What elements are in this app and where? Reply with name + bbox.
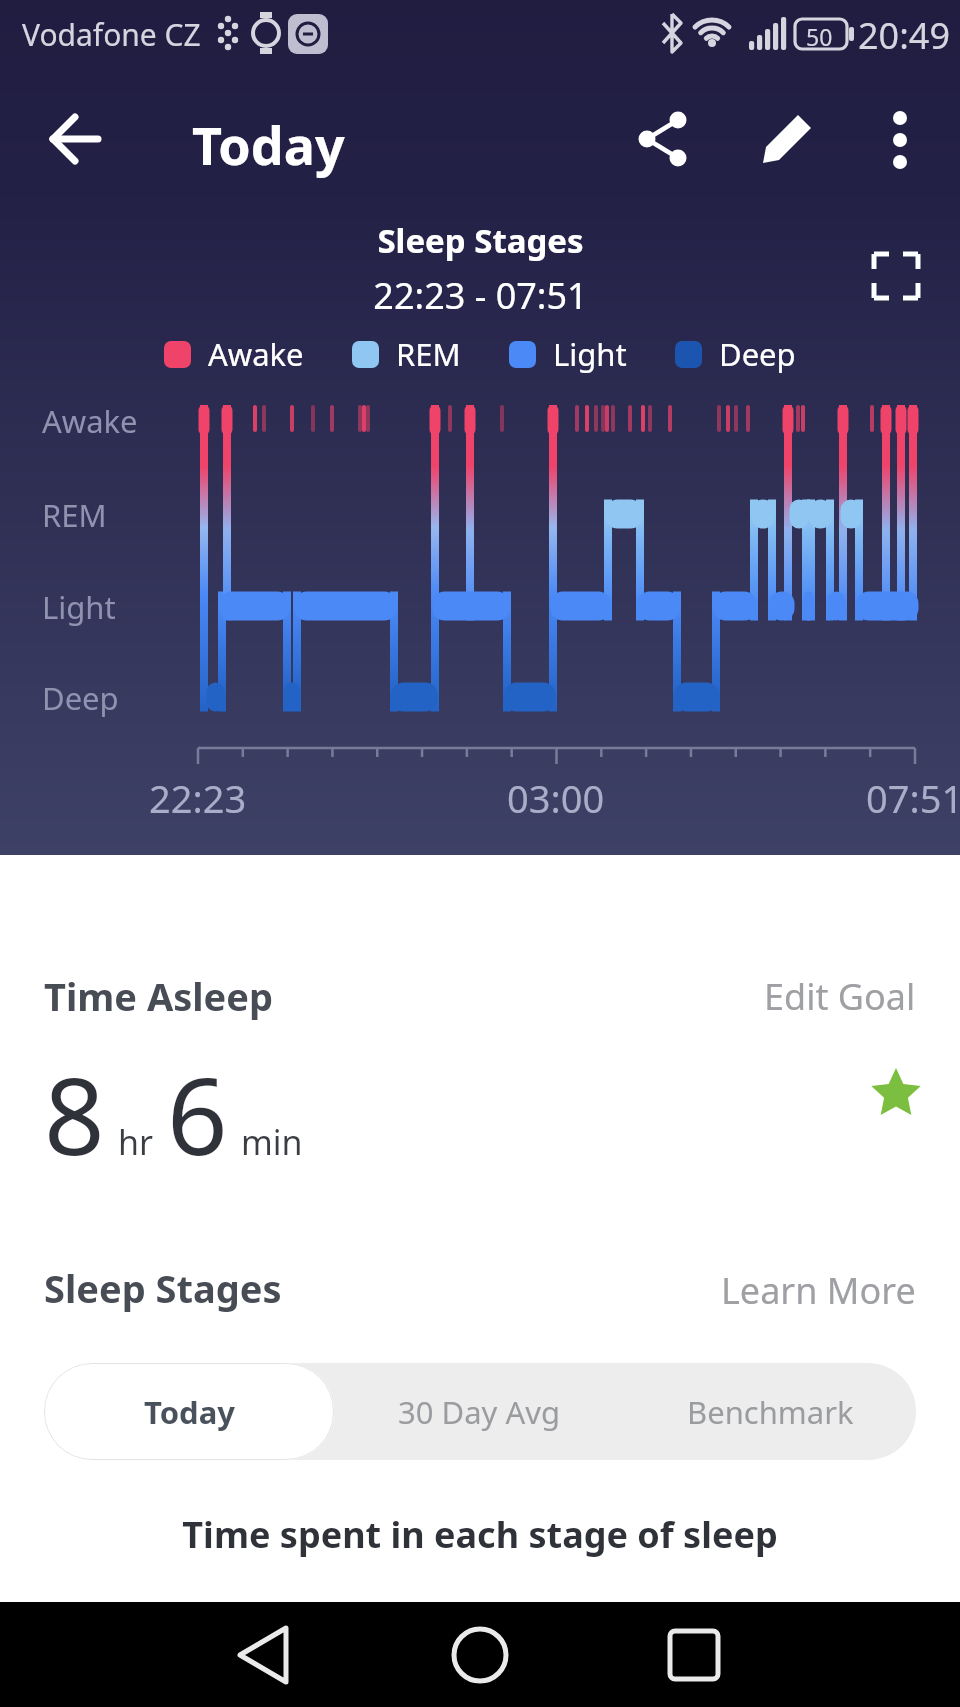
staticText: Light xyxy=(42,586,116,628)
button[interactable] xyxy=(40,104,110,174)
staticText: hr xyxy=(118,1119,154,1165)
staticText: 07:51 xyxy=(866,772,960,824)
staticText: Sleep Stages xyxy=(377,218,584,263)
button[interactable] xyxy=(872,252,920,300)
staticText: Awake xyxy=(42,400,138,442)
button[interactable]: Benchmark xyxy=(625,1363,916,1460)
staticText: 8 xyxy=(44,1042,105,1186)
button[interactable] xyxy=(320,1602,640,1707)
staticText: 50 xyxy=(806,21,833,52)
staticText: Time spent in each stage of sleep xyxy=(182,1510,778,1559)
button[interactable] xyxy=(878,108,922,172)
staticText: Time Asleep xyxy=(44,970,273,1022)
button[interactable]: Today xyxy=(44,1363,334,1460)
staticText: REM xyxy=(42,494,107,536)
button[interactable]: Edit Goal xyxy=(764,972,916,1021)
staticText: Vodafone CZ xyxy=(22,14,201,55)
button[interactable] xyxy=(760,110,816,166)
staticText: 20:49 xyxy=(858,11,951,60)
staticText: 22:23 xyxy=(149,772,247,824)
staticText: min xyxy=(241,1119,303,1165)
button[interactable]: Learn More xyxy=(721,1266,916,1315)
staticText: 03:00 xyxy=(507,772,605,824)
button[interactable] xyxy=(638,112,690,164)
button[interactable] xyxy=(0,1602,320,1707)
staticText: REM xyxy=(396,333,461,375)
staticText: Sleep Stages xyxy=(44,1262,282,1314)
staticText: Deep xyxy=(719,333,796,375)
staticText: Deep xyxy=(42,677,119,719)
staticText: 30 Day Avg xyxy=(398,1391,561,1433)
staticText: 6 xyxy=(167,1042,228,1186)
button[interactable]: 30 Day Avg xyxy=(334,1363,625,1460)
button[interactable] xyxy=(640,1602,960,1707)
staticText: Today xyxy=(192,109,345,180)
staticText: Awake xyxy=(208,333,304,375)
staticText: Light xyxy=(553,333,627,375)
staticText: 22:23 - 07:51 xyxy=(373,271,588,320)
staticText: Benchmark xyxy=(687,1391,854,1433)
staticText: Today xyxy=(144,1391,235,1433)
